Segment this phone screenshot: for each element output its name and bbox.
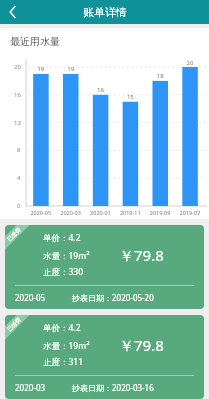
staticText: 止度：311 (43, 356, 84, 368)
staticText: 止度：330 (43, 266, 84, 278)
staticText: 2020-03 (15, 382, 46, 393)
button[interactable]: 单价：4.2 (5, 225, 204, 309)
button[interactable]: 单价：4.2 (5, 315, 204, 399)
staticText: 单价：4.2 (43, 322, 81, 334)
staticText: 抄表日期：2020-05-20 (72, 292, 154, 303)
button[interactable]: Back (0, 0, 26, 24)
staticText: 账单详情 (83, 5, 127, 19)
staticText: 最近用水量 (10, 35, 60, 48)
staticText: 水量：19m2 (43, 249, 90, 261)
staticText: ￥79.8 (119, 245, 164, 265)
staticText: 抄表日期：2020-03-16 (72, 382, 154, 393)
staticText: 2020-05 (15, 292, 46, 303)
staticText: ￥79.8 (119, 335, 164, 355)
staticText: 单价：4.2 (43, 232, 81, 244)
staticText: 水量：19m2 (43, 339, 90, 351)
